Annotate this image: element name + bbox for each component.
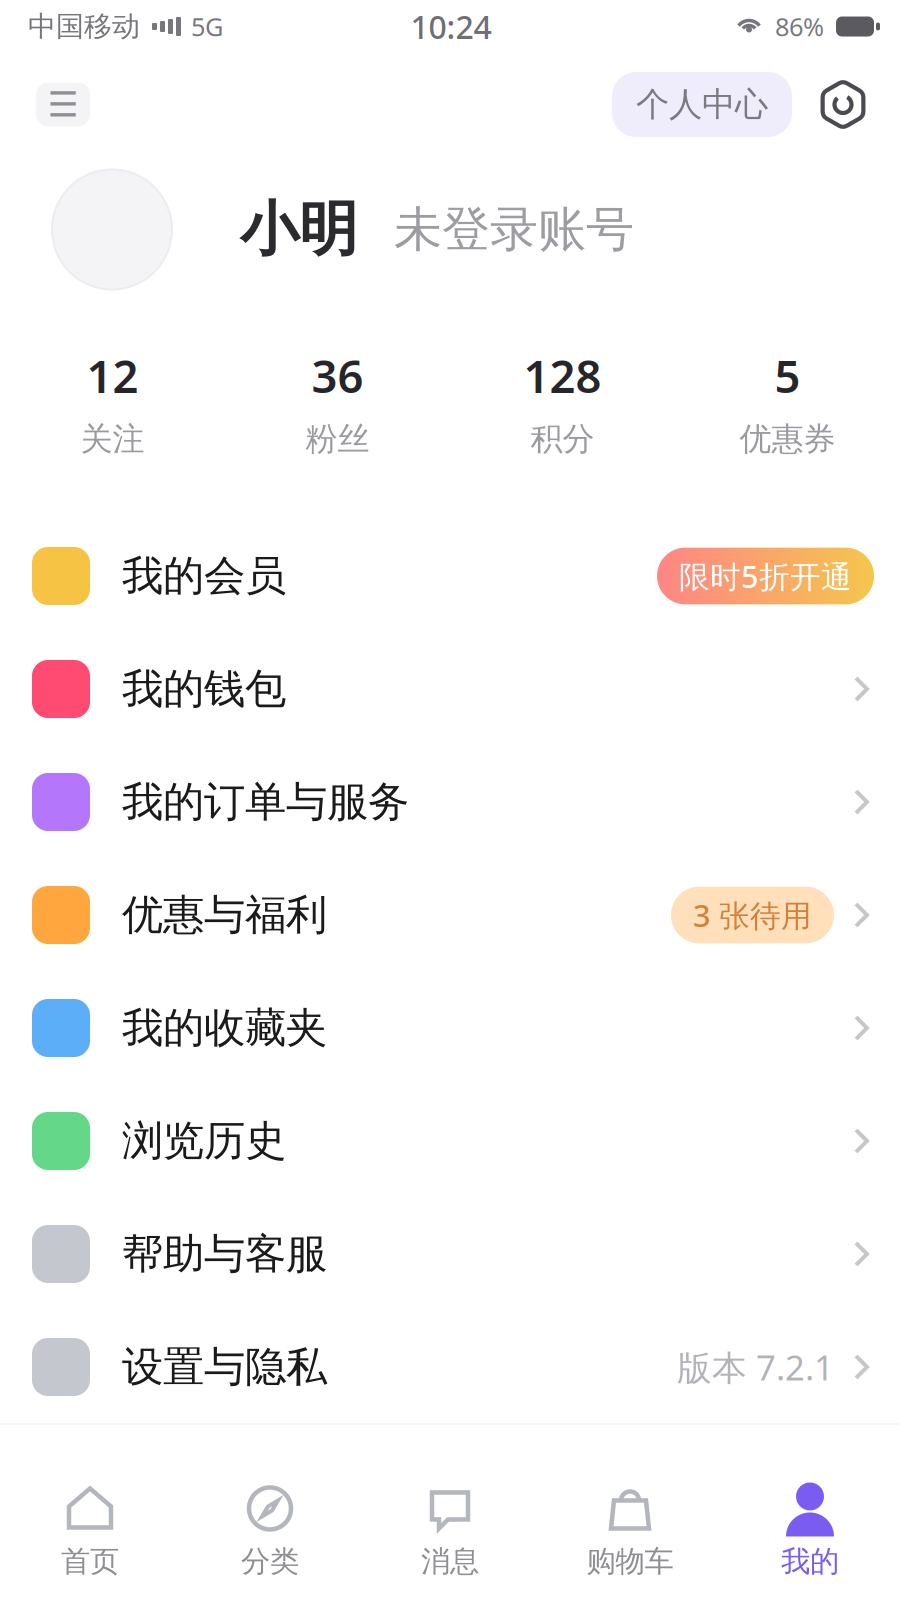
staticText: 小明 <box>240 193 358 266</box>
staticText: 10:24 <box>410 5 491 48</box>
button[interactable]: 12 <box>0 304 225 519</box>
staticText: 粉丝 <box>305 419 369 459</box>
staticText: ☰ <box>47 85 78 124</box>
staticText: 版本 7.2.1 <box>677 1344 834 1390</box>
staticText: 5 <box>774 345 800 405</box>
staticText: 我的会员 <box>122 551 286 601</box>
staticText: 消息 <box>421 1543 479 1579</box>
staticText: 86% <box>775 10 824 43</box>
button[interactable]: 我的订单与服务 <box>0 745 900 858</box>
staticText: 优惠券 <box>739 419 835 459</box>
button[interactable]: 我的 <box>720 1482 900 1579</box>
button[interactable]: 5 <box>675 304 900 519</box>
staticText: 购物车 <box>586 1543 673 1579</box>
button[interactable]: 128 <box>450 304 675 519</box>
button[interactable]: 个人中心 <box>612 72 792 137</box>
staticText: 优惠与福利 <box>122 890 327 940</box>
staticText: 个人中心 <box>636 84 768 125</box>
button[interactable]: 我的会员 <box>0 519 900 632</box>
button[interactable]: 购物车 <box>540 1482 720 1579</box>
staticText: 我的钱包 <box>122 664 286 714</box>
button[interactable]: 消息 <box>360 1482 540 1579</box>
staticText: 设置与隐私 <box>122 1342 327 1392</box>
staticText: 我的订单与服务 <box>122 777 409 827</box>
button[interactable]: Sync <box>792 79 868 129</box>
button[interactable]: 我的钱包 <box>0 632 900 745</box>
staticText: 分类 <box>241 1543 299 1579</box>
staticText: 12 <box>86 345 138 405</box>
button[interactable]: 帮助与客服 <box>0 1197 900 1310</box>
staticText: 关注 <box>80 419 144 459</box>
button[interactable]: 浏览历史 <box>0 1084 900 1197</box>
staticText: 首页 <box>61 1543 119 1579</box>
button[interactable]: 首页 <box>0 1482 180 1579</box>
button[interactable]: 设置与隐私 <box>0 1310 900 1423</box>
staticText: 积分 <box>530 419 594 459</box>
staticText: 128 <box>523 345 601 405</box>
button[interactable]: 分类 <box>180 1482 360 1579</box>
staticText: 未登录账号 <box>394 200 634 259</box>
button[interactable]: Menu <box>36 82 90 126</box>
staticText: 限时5折开通 <box>679 556 852 596</box>
button[interactable]: 我的收藏夹 <box>0 971 900 1084</box>
staticText: 5G <box>191 10 223 43</box>
button[interactable]: 优惠与福利 <box>0 858 900 971</box>
button[interactable]: 小明 <box>0 154 900 304</box>
staticText: 浏览历史 <box>122 1116 286 1166</box>
staticText: 中国移动 <box>28 9 140 44</box>
staticText: 36 <box>311 345 363 405</box>
staticText: 帮助与客服 <box>122 1229 327 1279</box>
staticText: 我的收藏夹 <box>122 1003 327 1053</box>
button[interactable]: 36 <box>225 304 450 519</box>
staticText: 我的 <box>781 1543 839 1579</box>
staticText: 3 张待用 <box>693 895 812 935</box>
